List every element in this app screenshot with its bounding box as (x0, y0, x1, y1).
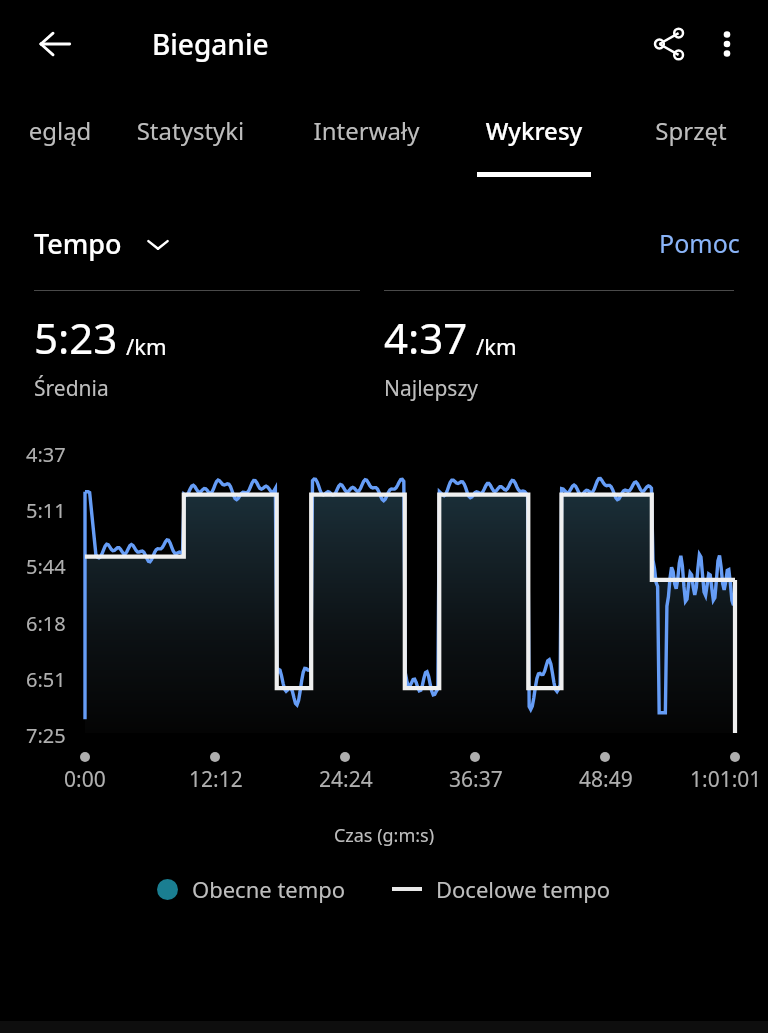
staticText: egląd (0, 114, 120, 147)
staticText: Bieganie (152, 25, 269, 63)
button[interactable]: 4:37 (384, 290, 734, 403)
button[interactable]: Docelowe tempo (392, 874, 611, 904)
staticText: 0:00 (64, 765, 106, 794)
staticText: Tempo (34, 225, 122, 262)
staticText: 4:37 (26, 441, 66, 468)
staticText: 12:12 (189, 765, 243, 794)
staticText: 6:51 (26, 666, 66, 693)
staticText: 36:37 (449, 765, 503, 794)
staticText: /km (126, 331, 167, 361)
staticText: Najlepszy (384, 374, 478, 403)
button[interactable]: egląd (0, 88, 120, 188)
button[interactable]: Back (26, 15, 84, 73)
staticText: Czas (g:m:s) (0, 823, 768, 848)
staticText: 24:24 (319, 765, 373, 794)
button[interactable]: Wykresy (454, 88, 614, 188)
staticText: Wykresy (454, 114, 614, 147)
staticText: Średnia (34, 374, 109, 403)
button[interactable]: Sprzęt (616, 88, 766, 188)
staticText: Interwały (284, 114, 449, 147)
staticText: 5:23 (34, 309, 118, 366)
staticText: 6:18 (26, 610, 66, 637)
staticText: 7:25 (26, 722, 66, 749)
staticText: Docelowe tempo (436, 874, 611, 904)
staticText: Statystyki (103, 114, 278, 147)
button[interactable]: Pomoc (659, 226, 740, 260)
staticText: Sprzęt (616, 114, 766, 147)
button[interactable]: Interwały (284, 88, 449, 188)
staticText: 1:01:01 (690, 765, 762, 794)
button[interactable]: 5:23 (34, 290, 360, 403)
button[interactable]: Share (640, 15, 698, 73)
staticText: 5:11 (26, 497, 66, 524)
staticText: 48:49 (579, 765, 633, 794)
staticText: 4:37 (384, 309, 468, 366)
staticText: /km (476, 331, 517, 361)
staticText: Obecne tempo (192, 874, 346, 904)
button[interactable]: Obecne tempo (157, 874, 346, 904)
staticText: Pomoc (659, 226, 740, 260)
button[interactable]: Statystyki (103, 88, 278, 188)
button[interactable]: Tempo (34, 225, 170, 262)
button[interactable]: More options (698, 15, 756, 73)
staticText: 5:44 (26, 553, 66, 580)
